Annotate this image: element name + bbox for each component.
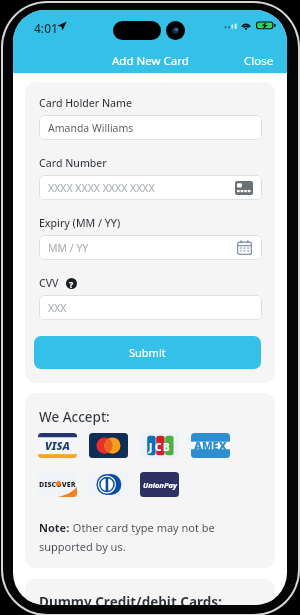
other: Card	[235, 181, 253, 195]
staticText: J	[149, 440, 153, 454]
staticText: B	[163, 440, 170, 454]
staticText: Card Number	[39, 156, 107, 170]
staticText: We Accept:	[39, 408, 110, 426]
staticText: Amanda Williams	[48, 121, 134, 135]
button[interactable]: Submit	[34, 336, 261, 369]
staticText: Submit	[129, 345, 166, 360]
button[interactable]: Dummy Credit/debit Cards:	[25, 579, 275, 605]
staticText: C	[155, 440, 162, 454]
staticText: MM / YY	[48, 241, 89, 255]
staticText: Add New Card	[112, 53, 189, 69]
other: Pick date	[237, 240, 252, 255]
button[interactable]: MM / YY	[39, 235, 262, 260]
staticText: CVV	[39, 276, 59, 290]
staticText: VISA	[45, 438, 70, 453]
staticText: Close	[244, 53, 274, 69]
staticText: Note:	[39, 520, 70, 535]
staticText: XXX	[48, 301, 67, 315]
staticText: XXXX XXXX XXXX XXXX	[48, 181, 155, 195]
staticText: Card Holder Name	[39, 96, 133, 110]
staticText: DISCOVER	[39, 479, 76, 489]
button[interactable]: XXXX XXXX XXXX XXXX	[39, 175, 262, 200]
staticText: Other card type may not be	[70, 520, 215, 535]
button[interactable]: Close	[244, 50, 287, 72]
button[interactable]: CVV help	[66, 278, 77, 289]
staticText: Expiry (MM / YY)	[39, 216, 121, 230]
staticText: 4:01	[34, 20, 58, 36]
staticText: AMEX	[194, 438, 227, 453]
staticText: UnionPay	[143, 480, 177, 490]
staticText: Dummy Credit/debit Cards:	[39, 593, 222, 605]
staticText: ?	[69, 278, 74, 289]
staticText: supported by us.	[39, 539, 126, 554]
button[interactable]: XXX	[39, 295, 262, 320]
button[interactable]: Amanda Williams	[39, 115, 262, 140]
